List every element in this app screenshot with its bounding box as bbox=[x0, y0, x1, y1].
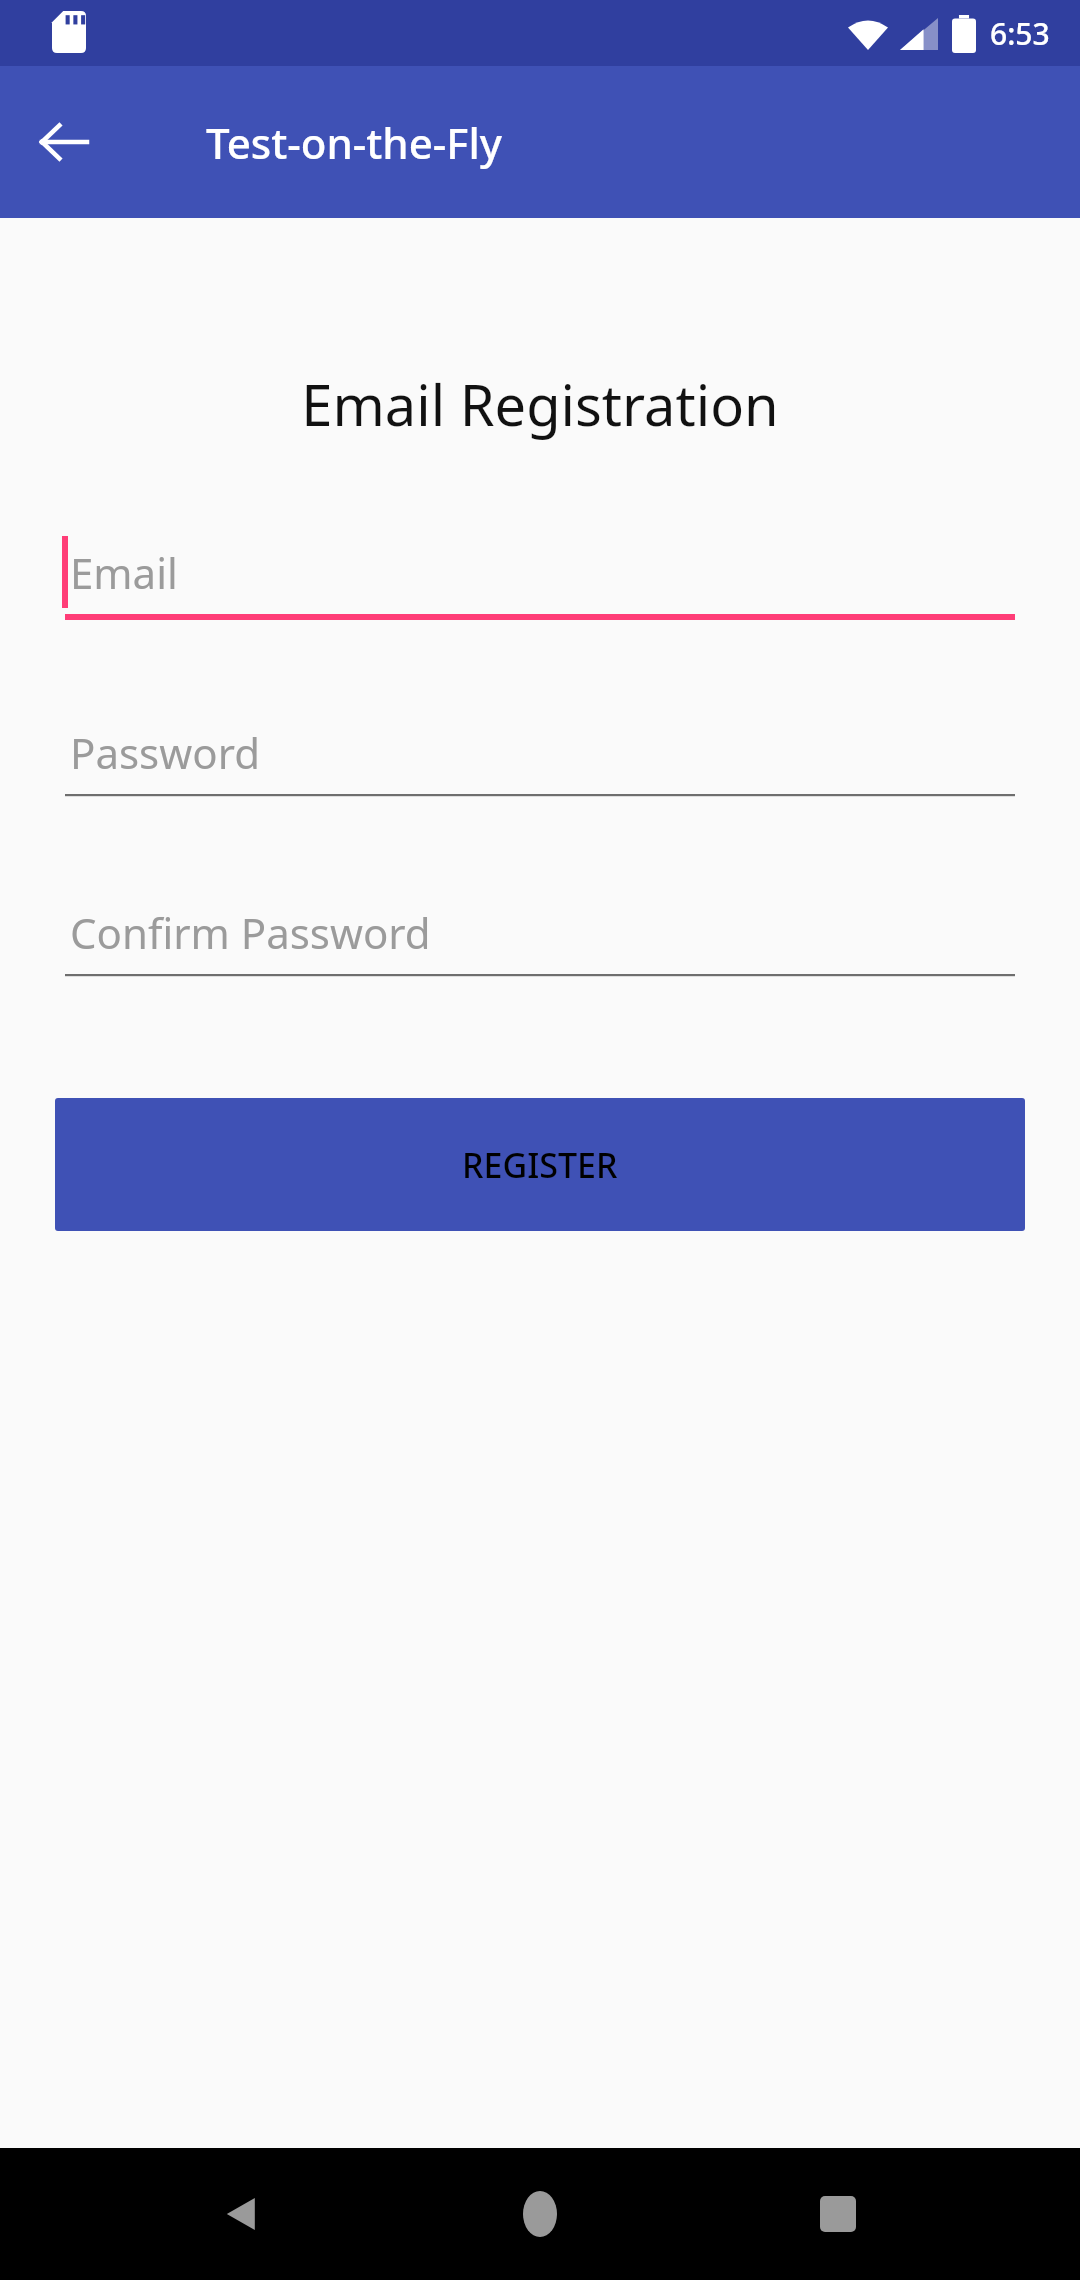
button[interactable]: Back bbox=[22, 100, 106, 184]
staticText: Password bbox=[70, 724, 260, 781]
button[interactable]: Back bbox=[182, 2154, 302, 2274]
button[interactable]: REGISTER bbox=[55, 1098, 1025, 1231]
staticText: Email bbox=[70, 544, 178, 601]
staticText: Test-on-the-Fly bbox=[206, 114, 502, 171]
staticText: Confirm Password bbox=[70, 904, 431, 961]
button[interactable]: Recent apps bbox=[778, 2154, 898, 2274]
staticText: REGISTER bbox=[462, 1142, 618, 1188]
staticText: 6:53 bbox=[990, 13, 1050, 54]
button[interactable]: Confirm Password bbox=[65, 886, 1015, 978]
staticText: Email Registration bbox=[0, 366, 1080, 442]
button[interactable]: Password bbox=[65, 706, 1015, 798]
button[interactable]: Email bbox=[65, 526, 1015, 618]
button[interactable]: Home bbox=[480, 2154, 600, 2274]
